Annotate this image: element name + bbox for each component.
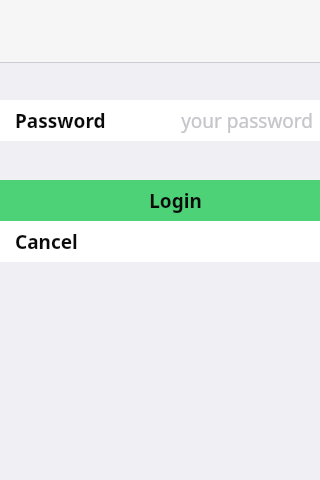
staticText: Cancel	[15, 229, 78, 255]
button[interactable]: Cancel	[0, 221, 320, 262]
staticText: Password	[15, 108, 106, 134]
button[interactable]: Login	[0, 180, 320, 221]
button[interactable]: Password	[0, 100, 320, 141]
staticText: Login	[149, 188, 202, 214]
staticText: your password	[181, 108, 313, 134]
